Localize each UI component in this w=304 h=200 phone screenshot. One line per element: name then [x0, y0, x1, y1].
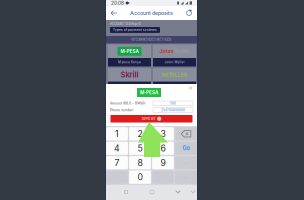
- staticText: NETELLER: [162, 72, 187, 78]
- button[interactable]: Close: [187, 84, 194, 91]
- staticText: 5: [137, 143, 142, 153]
- button[interactable]: 7: [106, 156, 128, 169]
- staticText: 9: [160, 157, 165, 168]
- staticText: Jeton: [160, 48, 174, 54]
- staticText: Account deposits: [130, 10, 173, 16]
- staticText: Go: [182, 145, 189, 152]
- staticText: 3: [160, 129, 165, 139]
- staticText: Wallet: [174, 48, 189, 54]
- staticText: ACCOUNT 1345Kgo15: [110, 22, 141, 26]
- button[interactable]: Backspace: [175, 127, 197, 140]
- staticText: 4: [114, 143, 120, 153]
- button[interactable]: Go: [175, 142, 197, 155]
- button[interactable]: Home: [146, 187, 158, 197]
- button[interactable]: 8: [129, 156, 151, 169]
- button[interactable]: DEPOSIT: [110, 115, 192, 122]
- staticText: M-pesa Kenya: [118, 60, 141, 64]
- staticText: 254700000000: [161, 108, 185, 112]
- staticText: Types of payment systems: [113, 28, 157, 32]
- staticText: Jeton Wallet: [164, 60, 184, 64]
- button[interactable]: Back: [108, 6, 120, 20]
- staticText: M-PESA: [120, 48, 138, 54]
- button[interactable]: 4: [106, 142, 128, 155]
- staticText: Amount (68.0 – 81400):: [110, 101, 146, 105]
- staticText: 500: [170, 101, 176, 105]
- button[interactable]: 5: [129, 142, 151, 155]
- staticText: ·: [185, 159, 187, 166]
- button[interactable]: Hide keyboard: [187, 187, 199, 197]
- button[interactable]: Jeton: [153, 44, 196, 66]
- staticText: M-PESA: [140, 90, 158, 95]
- staticText: 7: [115, 157, 120, 168]
- button[interactable]: Back: [172, 187, 184, 197]
- staticText: Phone number:: [110, 108, 134, 112]
- staticText: DEPOSIT: [142, 117, 156, 121]
- button[interactable]: 6: [152, 142, 174, 155]
- button[interactable]: 0: [129, 171, 151, 184]
- staticText: 0: [137, 172, 142, 182]
- staticText: Skrill: [120, 70, 138, 79]
- button[interactable]: 2: [129, 127, 151, 140]
- staticText: 6: [160, 143, 165, 153]
- button[interactable]: 9: [152, 156, 174, 169]
- button[interactable]: M-PESA: [108, 44, 151, 66]
- staticText: 8: [137, 157, 142, 168]
- button[interactable]: Skrill: [108, 68, 151, 90]
- button[interactable]: Recent apps: [120, 187, 132, 197]
- button[interactable]: Refresh: [183, 6, 195, 20]
- button[interactable]: NETELLER: [153, 68, 196, 90]
- button[interactable]: Types of payment systems: [110, 27, 160, 33]
- staticText: ·: [185, 174, 187, 180]
- staticText: RECOMMENDED METHODS: [131, 38, 171, 42]
- staticText: 2: [137, 129, 142, 139]
- button[interactable]: 1: [106, 127, 128, 140]
- staticText: 20:08: [111, 0, 124, 6]
- staticText: 1: [115, 129, 119, 139]
- button[interactable]: 3: [152, 127, 174, 140]
